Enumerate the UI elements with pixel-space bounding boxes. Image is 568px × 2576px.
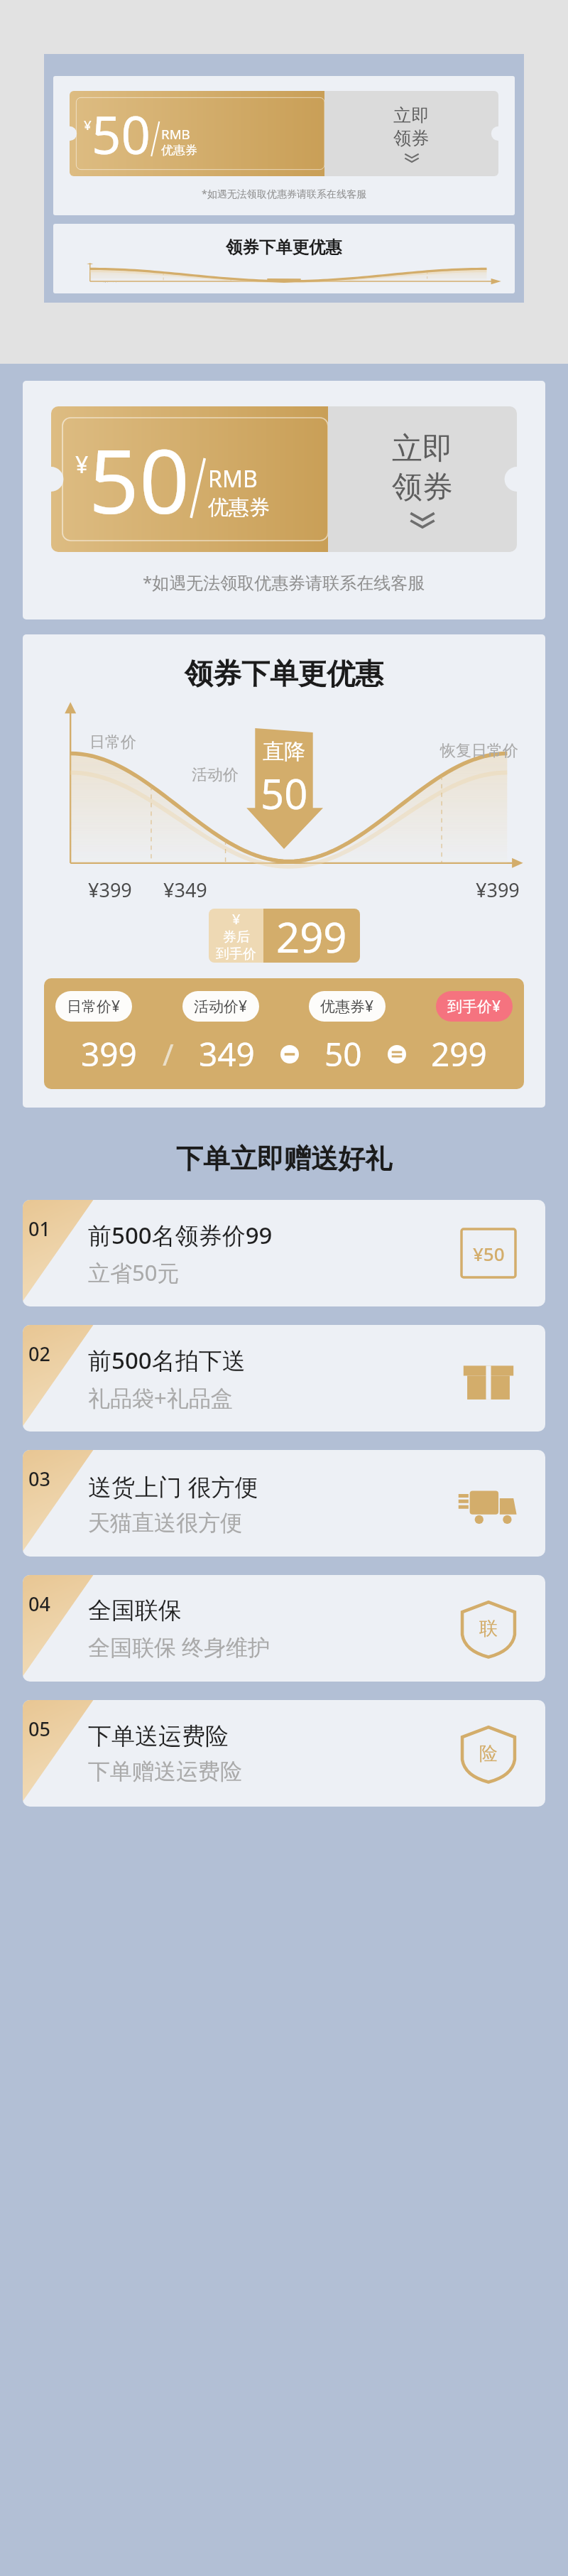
- staticText: 优惠券¥: [320, 996, 374, 1017]
- button[interactable]: 运费险: [23, 1700, 545, 1807]
- staticText: 到手价: [216, 946, 256, 963]
- staticText: 券后: [223, 929, 250, 946]
- button[interactable]: 礼品: [23, 1325, 545, 1432]
- staticText: 直降: [263, 738, 305, 765]
- staticText: 前500名拍下送: [88, 1344, 246, 1376]
- staticText: 下单送运费险: [88, 1721, 229, 1751]
- staticText: 活动价: [192, 765, 239, 785]
- staticText: 299: [431, 1032, 487, 1076]
- staticText: 399: [81, 1032, 137, 1076]
- staticText: 50: [261, 765, 308, 821]
- staticText: 50: [92, 99, 151, 169]
- staticText: 299: [276, 909, 347, 963]
- button[interactable]: 送货: [23, 1450, 545, 1557]
- staticText: ¥: [232, 909, 241, 929]
- staticText: 01: [28, 1216, 50, 1242]
- staticText: 立即: [392, 430, 453, 468]
- staticText: 日常价: [89, 732, 136, 752]
- staticText: *如遇无法领取优惠券请联系在线客服: [202, 187, 367, 200]
- staticText: 05: [28, 1716, 50, 1742]
- staticText: 领券: [393, 127, 430, 150]
- staticText: 50: [324, 1032, 362, 1076]
- staticText: 活动价¥: [194, 996, 248, 1017]
- staticText: 领券: [392, 468, 453, 507]
- button[interactable]: 立即领券: [51, 406, 517, 552]
- staticText: 前500名领券价99: [88, 1219, 273, 1251]
- staticText: 立即: [393, 104, 430, 127]
- staticText: 领券下单更优惠: [185, 656, 383, 691]
- button[interactable]: 联保: [23, 1575, 545, 1682]
- staticText: 下单赠送运费险: [88, 1758, 242, 1785]
- button[interactable]: 立即领券: [70, 91, 498, 176]
- staticText: 03: [28, 1466, 50, 1492]
- staticText: 天猫直送很方便: [88, 1509, 242, 1537]
- staticText: ¥50: [473, 1241, 505, 1266]
- staticText: ¥399: [88, 877, 132, 903]
- staticText: 全国联保: [88, 1596, 182, 1625]
- staticText: 优惠券: [208, 494, 270, 521]
- staticText: 礼品袋+礼品盒: [88, 1382, 233, 1412]
- staticText: 日常价: [92, 281, 120, 283]
- staticText: 下单立即赠送好礼: [0, 1142, 568, 1176]
- staticText: 送货上门 很方便: [88, 1471, 258, 1503]
- staticText: 优惠券: [161, 143, 197, 158]
- staticText: 到手价¥: [447, 996, 501, 1017]
- staticText: 349: [199, 1032, 255, 1076]
- button[interactable]: 优惠券: [23, 1200, 545, 1306]
- staticText: /: [163, 1034, 174, 1074]
- staticText: 02: [28, 1341, 50, 1367]
- staticText: 50: [89, 419, 190, 539]
- staticText: 04: [28, 1591, 50, 1617]
- staticText: ¥399: [476, 877, 520, 903]
- staticText: 全国联保 终身维护: [88, 1632, 271, 1662]
- staticText: 恢复日常价: [440, 741, 518, 761]
- staticText: 领券下单更优惠: [226, 237, 342, 257]
- staticText: ¥: [84, 116, 92, 134]
- staticText: 险: [479, 1742, 498, 1765]
- staticText: RMB: [208, 463, 258, 494]
- staticText: 联: [479, 1617, 498, 1640]
- staticText: RMB: [161, 125, 190, 143]
- staticText: 立省50元: [88, 1257, 180, 1287]
- staticText: ¥: [75, 449, 89, 480]
- staticText: ¥349: [163, 877, 207, 903]
- staticText: *如遇无法领取优惠券请联系在线客服: [143, 570, 425, 594]
- staticText: 日常价¥: [67, 996, 121, 1017]
